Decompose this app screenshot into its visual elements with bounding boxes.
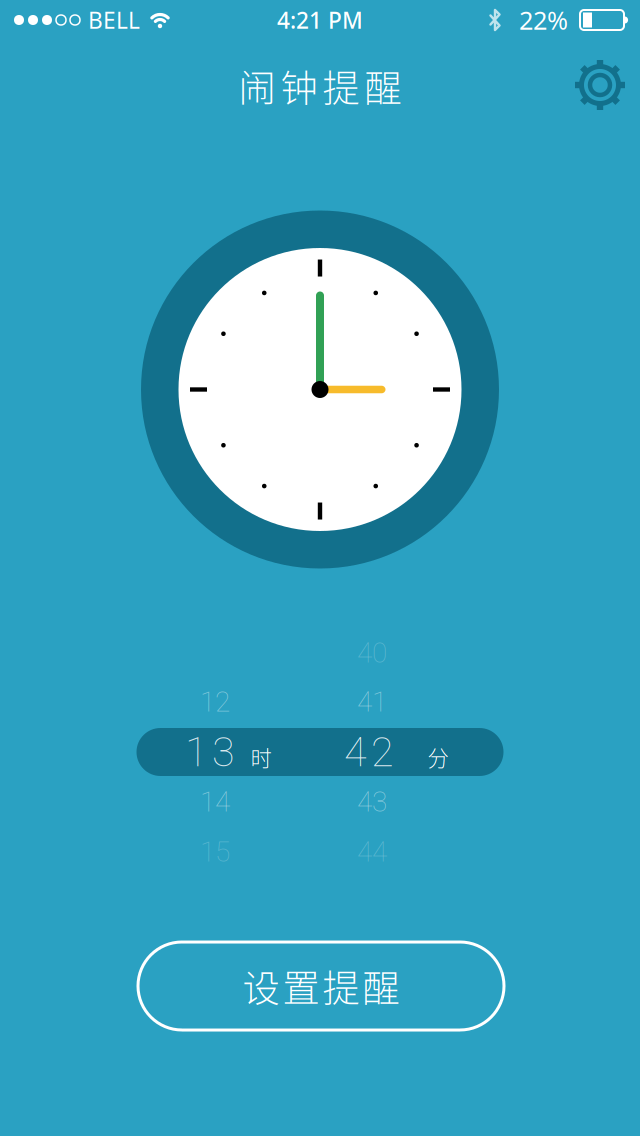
staticText: 22% xyxy=(519,3,568,37)
staticText: 13 xyxy=(185,728,235,776)
staticText: BELL xyxy=(88,5,140,35)
staticText: 44 xyxy=(357,836,387,868)
staticText: 4:21 PM xyxy=(277,5,363,35)
staticText: 12 xyxy=(200,686,230,718)
staticText: 14 xyxy=(200,786,230,818)
staticText: 41 xyxy=(357,686,387,718)
staticText: 43 xyxy=(357,786,387,818)
button[interactable]: 设置提醒 xyxy=(138,942,504,1030)
staticText: 设置提醒 xyxy=(242,959,399,1013)
staticText: 40 xyxy=(357,637,387,669)
button[interactable]: 设置 xyxy=(575,60,625,110)
staticText: 时 xyxy=(250,742,271,772)
staticText: 15 xyxy=(200,836,230,868)
staticText: 闹钟提醒 xyxy=(238,59,401,113)
staticText: 42 xyxy=(344,728,394,776)
staticText: 分 xyxy=(427,742,448,772)
